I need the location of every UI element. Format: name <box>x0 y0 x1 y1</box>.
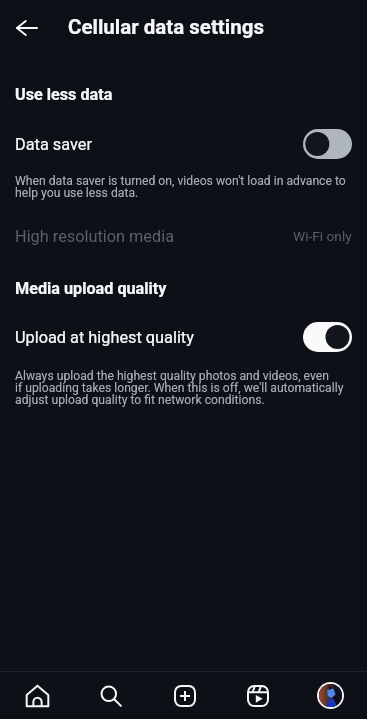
staticText: Cellular data settings <box>68 15 264 39</box>
button[interactable]: Back <box>5 6 49 50</box>
staticText: Media upload quality <box>15 279 167 298</box>
staticText: When data saver is turned on, videos won… <box>15 175 350 199</box>
staticText: Wi-Fi only <box>293 228 352 244</box>
staticText: Use less data <box>15 85 113 104</box>
button[interactable]: High resolution media <box>0 214 367 258</box>
staticText: High resolution media <box>15 227 293 246</box>
staticText: Upload at highest quality <box>15 328 303 347</box>
staticText: Data saver <box>15 135 303 154</box>
button[interactable]: Home <box>0 672 74 719</box>
button[interactable]: Profile <box>294 672 367 719</box>
button[interactable]: Upload at highest quality <box>0 314 367 360</box>
button[interactable]: Reels <box>221 672 294 719</box>
staticText: Always upload the highest quality photos… <box>15 370 350 406</box>
button[interactable]: Create <box>148 672 221 719</box>
button[interactable]: Search <box>74 672 148 719</box>
button[interactable]: Data saver <box>0 121 367 167</box>
